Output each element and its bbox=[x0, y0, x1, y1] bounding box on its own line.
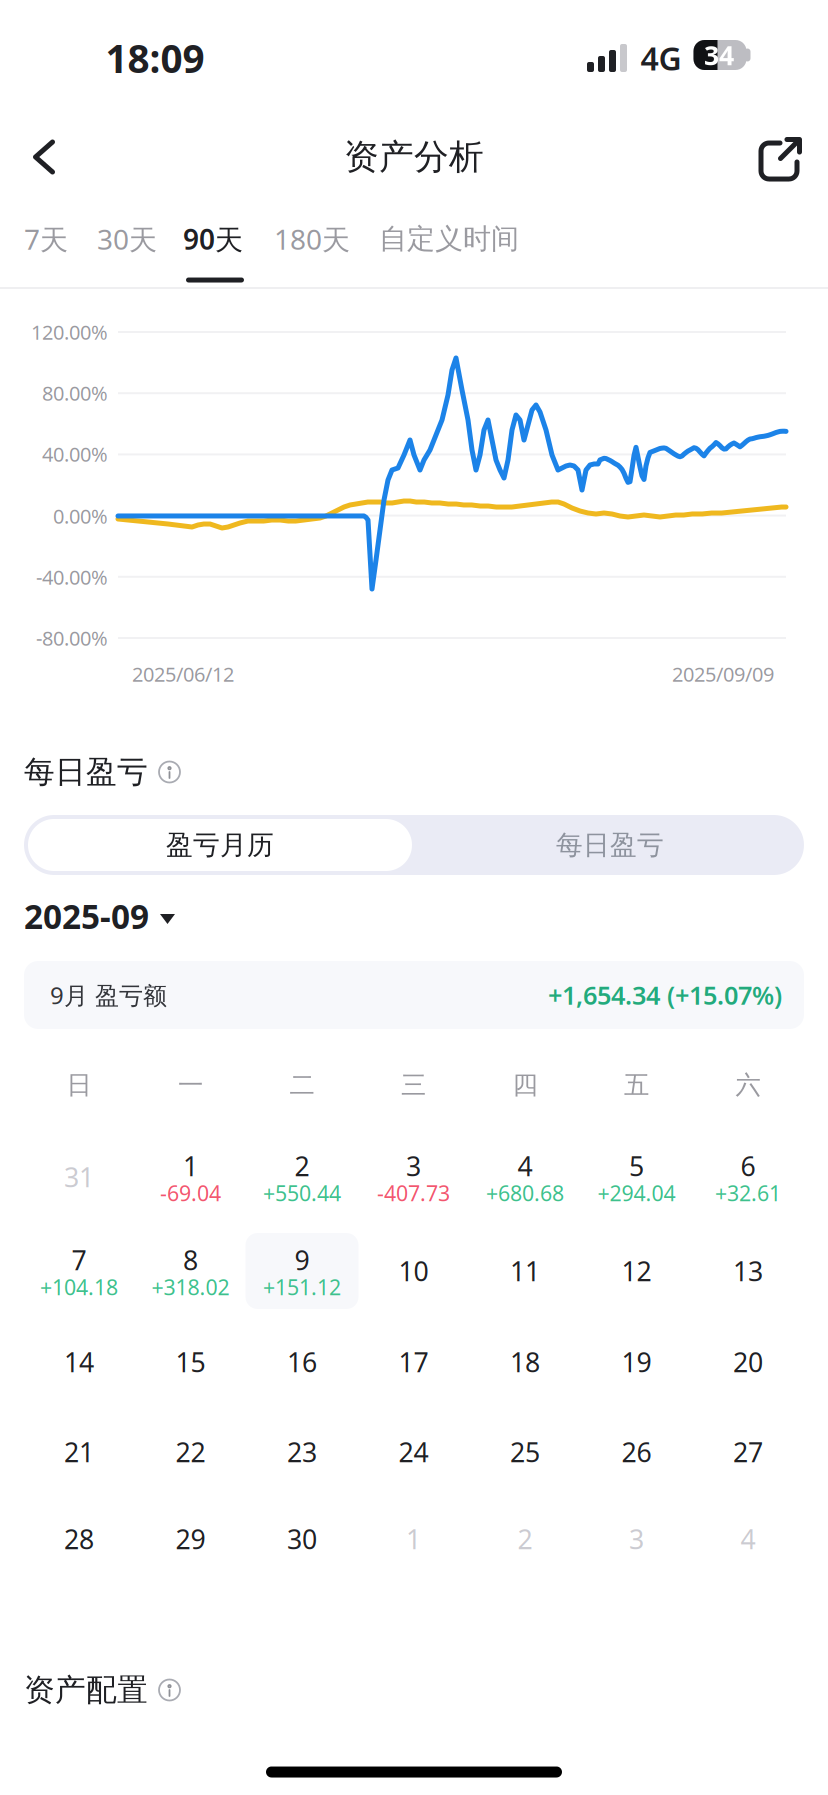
button[interactable]: 22 bbox=[134, 1412, 247, 1492]
button[interactable]: 7天 bbox=[0, 207, 126, 271]
staticText: 1 bbox=[183, 1148, 198, 1184]
button[interactable]: 13 bbox=[691, 1231, 804, 1311]
button[interactable]: 30 bbox=[245, 1499, 358, 1579]
staticText: 80.00% bbox=[42, 380, 108, 406]
button[interactable]: 11 bbox=[468, 1231, 581, 1311]
button[interactable]: 23 bbox=[245, 1412, 358, 1492]
button[interactable]: 29 bbox=[134, 1499, 247, 1579]
staticText: 30 bbox=[287, 1521, 317, 1557]
staticText: 26 bbox=[621, 1434, 651, 1470]
button[interactable]: 2 bbox=[245, 1137, 358, 1217]
staticText: 29 bbox=[175, 1521, 205, 1557]
staticText: 40.00% bbox=[42, 441, 108, 467]
button[interactable]: 3 bbox=[580, 1499, 693, 1579]
button[interactable]: 27 bbox=[691, 1412, 804, 1492]
staticText: 20 bbox=[733, 1344, 763, 1380]
button[interactable]: 8 bbox=[134, 1231, 247, 1311]
button[interactable]: 12 bbox=[580, 1231, 693, 1311]
button[interactable]: 17 bbox=[357, 1322, 470, 1402]
staticText: +32.61 bbox=[715, 1179, 781, 1207]
button[interactable]: 2025-09 bbox=[24, 889, 244, 943]
staticText: 4G bbox=[640, 37, 681, 79]
staticText: 7天 bbox=[24, 220, 68, 258]
staticText: -40.00% bbox=[36, 564, 108, 590]
staticText: 10 bbox=[398, 1253, 428, 1289]
staticText: 一 bbox=[178, 1069, 203, 1100]
staticText: 21 bbox=[64, 1434, 94, 1470]
button[interactable]: 自定义时间 bbox=[369, 207, 529, 271]
button[interactable]: 1 bbox=[357, 1499, 470, 1579]
button[interactable]: 3 bbox=[357, 1137, 470, 1217]
staticText: 1 bbox=[406, 1521, 421, 1557]
staticText: -69.04 bbox=[160, 1179, 221, 1207]
button[interactable]: 6 bbox=[691, 1137, 804, 1217]
button[interactable]: Back bbox=[2, 115, 86, 199]
staticText: +1,654.34 (+15.07%) bbox=[548, 978, 782, 1012]
staticText: 三 bbox=[401, 1069, 426, 1100]
button[interactable]: 24 bbox=[357, 1412, 470, 1492]
button[interactable]: 盈亏月历 bbox=[24, 816, 416, 874]
staticText: 24 bbox=[398, 1434, 428, 1470]
staticText: 23 bbox=[287, 1434, 317, 1470]
staticText: 8 bbox=[183, 1242, 198, 1278]
staticText: 2 bbox=[517, 1521, 532, 1557]
button[interactable]: 4 bbox=[691, 1499, 804, 1579]
button[interactable]: 1 bbox=[134, 1137, 247, 1217]
staticText: 2025/09/09 bbox=[672, 661, 774, 687]
staticText: 34 bbox=[704, 37, 734, 73]
button[interactable]: 19 bbox=[580, 1322, 693, 1402]
button[interactable]: 90天 bbox=[133, 207, 293, 271]
button[interactable]: Share bbox=[740, 115, 824, 199]
button[interactable]: 5 bbox=[580, 1137, 693, 1217]
staticText: 资产配置 bbox=[24, 1671, 148, 1709]
button[interactable]: 10 bbox=[357, 1231, 470, 1311]
button[interactable]: 4 bbox=[468, 1137, 581, 1217]
staticText: 22 bbox=[175, 1434, 205, 1470]
staticText: -407.73 bbox=[377, 1179, 450, 1207]
button[interactable]: 31 bbox=[22, 1137, 135, 1217]
staticText: 19 bbox=[621, 1344, 651, 1380]
staticText: -80.00% bbox=[36, 625, 108, 651]
staticText: 27 bbox=[733, 1434, 763, 1470]
staticText: 自定义时间 bbox=[379, 222, 519, 256]
button[interactable]: 15 bbox=[134, 1322, 247, 1402]
button[interactable]: 20 bbox=[691, 1322, 804, 1402]
staticText: +318.02 bbox=[151, 1273, 229, 1301]
staticText: 18:09 bbox=[105, 32, 204, 84]
staticText: 资产分析 bbox=[344, 136, 484, 178]
staticText: 14 bbox=[64, 1344, 94, 1380]
button[interactable]: 180天 bbox=[232, 207, 392, 271]
staticText: 盈亏月历 bbox=[166, 829, 274, 861]
button[interactable]: 2 bbox=[468, 1499, 581, 1579]
staticText: 六 bbox=[735, 1069, 760, 1100]
staticText: 15 bbox=[175, 1344, 205, 1380]
button[interactable]: 28 bbox=[22, 1499, 135, 1579]
staticText: 3 bbox=[406, 1148, 421, 1184]
staticText: 11 bbox=[510, 1253, 540, 1289]
staticText: 五 bbox=[624, 1069, 649, 1100]
staticText: 4 bbox=[517, 1148, 532, 1184]
staticText: +294.04 bbox=[597, 1179, 675, 1207]
staticText: 2025-09 bbox=[24, 894, 149, 938]
button[interactable]: 26 bbox=[580, 1412, 693, 1492]
staticText: 31 bbox=[64, 1159, 94, 1195]
button[interactable]: 18 bbox=[468, 1322, 581, 1402]
button[interactable]: 14 bbox=[22, 1322, 135, 1402]
button[interactable]: 25 bbox=[468, 1412, 581, 1492]
button[interactable]: 16 bbox=[245, 1322, 358, 1402]
button[interactable]: 7 bbox=[22, 1231, 135, 1311]
staticText: 9月 盈亏额 bbox=[50, 979, 167, 1011]
staticText: 四 bbox=[512, 1069, 537, 1100]
staticText: 12 bbox=[621, 1253, 651, 1289]
staticText: 2025/06/12 bbox=[132, 661, 234, 687]
staticText: 3 bbox=[629, 1521, 644, 1557]
button[interactable]: 30天 bbox=[47, 207, 207, 271]
staticText: 0.00% bbox=[53, 503, 108, 529]
staticText: 日 bbox=[66, 1069, 91, 1100]
button[interactable]: 9 bbox=[245, 1231, 358, 1311]
button[interactable]: 每日盈亏 bbox=[416, 816, 804, 874]
staticText: 9 bbox=[294, 1242, 309, 1278]
staticText: 2 bbox=[294, 1148, 309, 1184]
button[interactable]: 21 bbox=[22, 1412, 135, 1492]
staticText: 17 bbox=[398, 1344, 428, 1380]
